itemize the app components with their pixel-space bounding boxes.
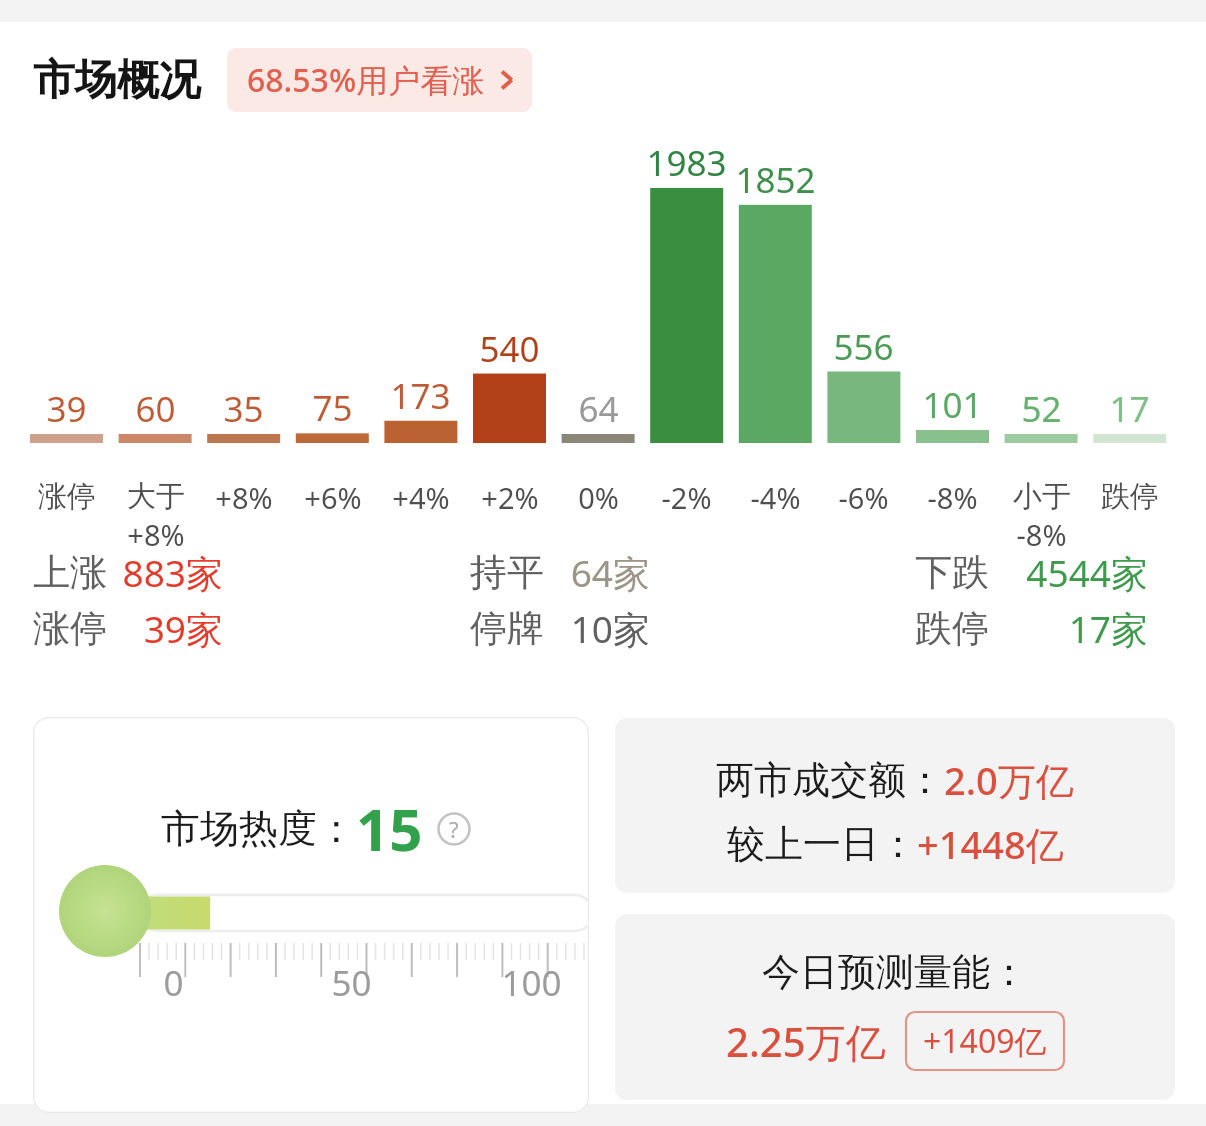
staticText: 540 [459, 325, 560, 373]
staticText: 39 [16, 385, 117, 433]
staticText: 39家 [107, 603, 223, 654]
staticText: 跌停 [1101, 478, 1159, 515]
staticText: 持平 [470, 549, 544, 596]
staticText: +1409亿 [923, 1019, 1047, 1063]
staticText: +6% [304, 478, 362, 517]
staticText: 两市成交额： [716, 756, 944, 804]
staticText: 2.25万亿 [726, 1014, 886, 1069]
button[interactable]: 市场热度： [33, 717, 589, 1113]
staticText: +8% [127, 515, 185, 554]
staticText: 17 [1079, 385, 1180, 433]
staticText: 101 [902, 381, 1003, 429]
button[interactable]: 说明 [437, 812, 471, 846]
staticText: 市场热度： [161, 804, 356, 853]
staticText: -8% [927, 478, 978, 517]
button[interactable]: 跌停 [915, 603, 1148, 654]
staticText: 1852 [725, 156, 826, 204]
staticText: 涨停 [38, 478, 96, 515]
staticText: +1448亿 [917, 818, 1064, 870]
staticText: 0% [578, 478, 619, 517]
staticText: ? [449, 814, 459, 844]
staticText: 15 [356, 789, 423, 868]
staticText: 1983 [636, 139, 737, 187]
staticText: 大于 [127, 478, 185, 515]
staticText: 较上一日： [727, 820, 917, 868]
staticText: 883家 [107, 547, 223, 598]
staticText: 52 [991, 385, 1092, 433]
staticText: 100 [453, 959, 589, 1007]
staticText: 跌停 [915, 605, 989, 652]
staticText: 173 [370, 372, 471, 420]
staticText: 涨停 [33, 605, 107, 652]
staticText: 556 [813, 323, 914, 371]
staticText: +8% [215, 478, 273, 517]
staticText: +2% [481, 478, 539, 517]
button[interactable]: 持平 [470, 547, 650, 598]
staticText: +4% [392, 478, 450, 517]
staticText: 上涨 [33, 549, 107, 596]
staticText: 17家 [989, 603, 1148, 654]
staticText: 10家 [544, 603, 650, 654]
staticText: 50 [273, 959, 430, 1007]
staticText: -8% [1016, 515, 1067, 554]
button[interactable]: 两市成交额： [615, 718, 1175, 893]
staticText: 0 [95, 959, 252, 1007]
button[interactable]: 68.53%用户看涨 [227, 48, 532, 112]
button[interactable]: 今日预测量能： [615, 914, 1175, 1100]
staticText: 64家 [544, 547, 650, 598]
staticText: 4544家 [989, 547, 1148, 598]
staticText: 60 [105, 385, 206, 433]
staticText: -4% [750, 478, 801, 517]
button[interactable]: 下跌 [915, 547, 1148, 598]
staticText: 小于 [1013, 478, 1071, 515]
staticText: 今日预测量能： [762, 948, 1028, 996]
staticText: 68.53%用户看涨 [247, 58, 485, 102]
staticText: 下跌 [915, 549, 989, 596]
button[interactable]: 上涨 [33, 547, 223, 598]
staticText: 64 [548, 385, 649, 433]
button[interactable]: 涨停 [33, 603, 223, 654]
button[interactable]: 停牌 [470, 603, 650, 654]
staticText: 35 [193, 385, 294, 433]
staticText: 市场概况 [33, 54, 201, 107]
staticText: -6% [838, 478, 889, 517]
staticText: 停牌 [470, 605, 544, 652]
button[interactable]: +1409亿 [906, 1012, 1064, 1070]
staticText: -2% [661, 478, 712, 517]
staticText: 2.0万亿 [944, 754, 1074, 806]
staticText: 75 [282, 384, 383, 432]
